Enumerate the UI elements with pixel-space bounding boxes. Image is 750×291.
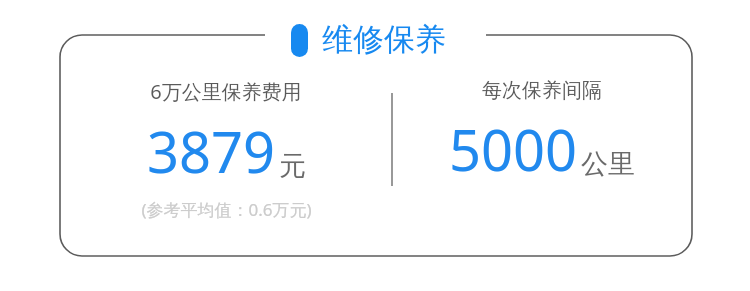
other: 章节标记 — [291, 24, 308, 57]
staticText: 公里 — [581, 147, 635, 181]
staticText: 3879 — [147, 113, 276, 189]
staticText: 维修保养 — [322, 20, 446, 59]
button[interactable]: 每次保养间隔 — [392, 78, 692, 187]
staticText: 每次保养间隔 — [482, 78, 602, 103]
button[interactable]: 6万公里保养费用 — [76, 78, 376, 221]
staticText: 5000 — [449, 111, 578, 187]
staticText: 6万公里保养费用 — [150, 78, 302, 105]
staticText: (参考平均值：0.6万元) — [141, 198, 312, 221]
button[interactable]: 章节标记 — [291, 20, 446, 61]
staticText: 元 — [279, 149, 306, 183]
